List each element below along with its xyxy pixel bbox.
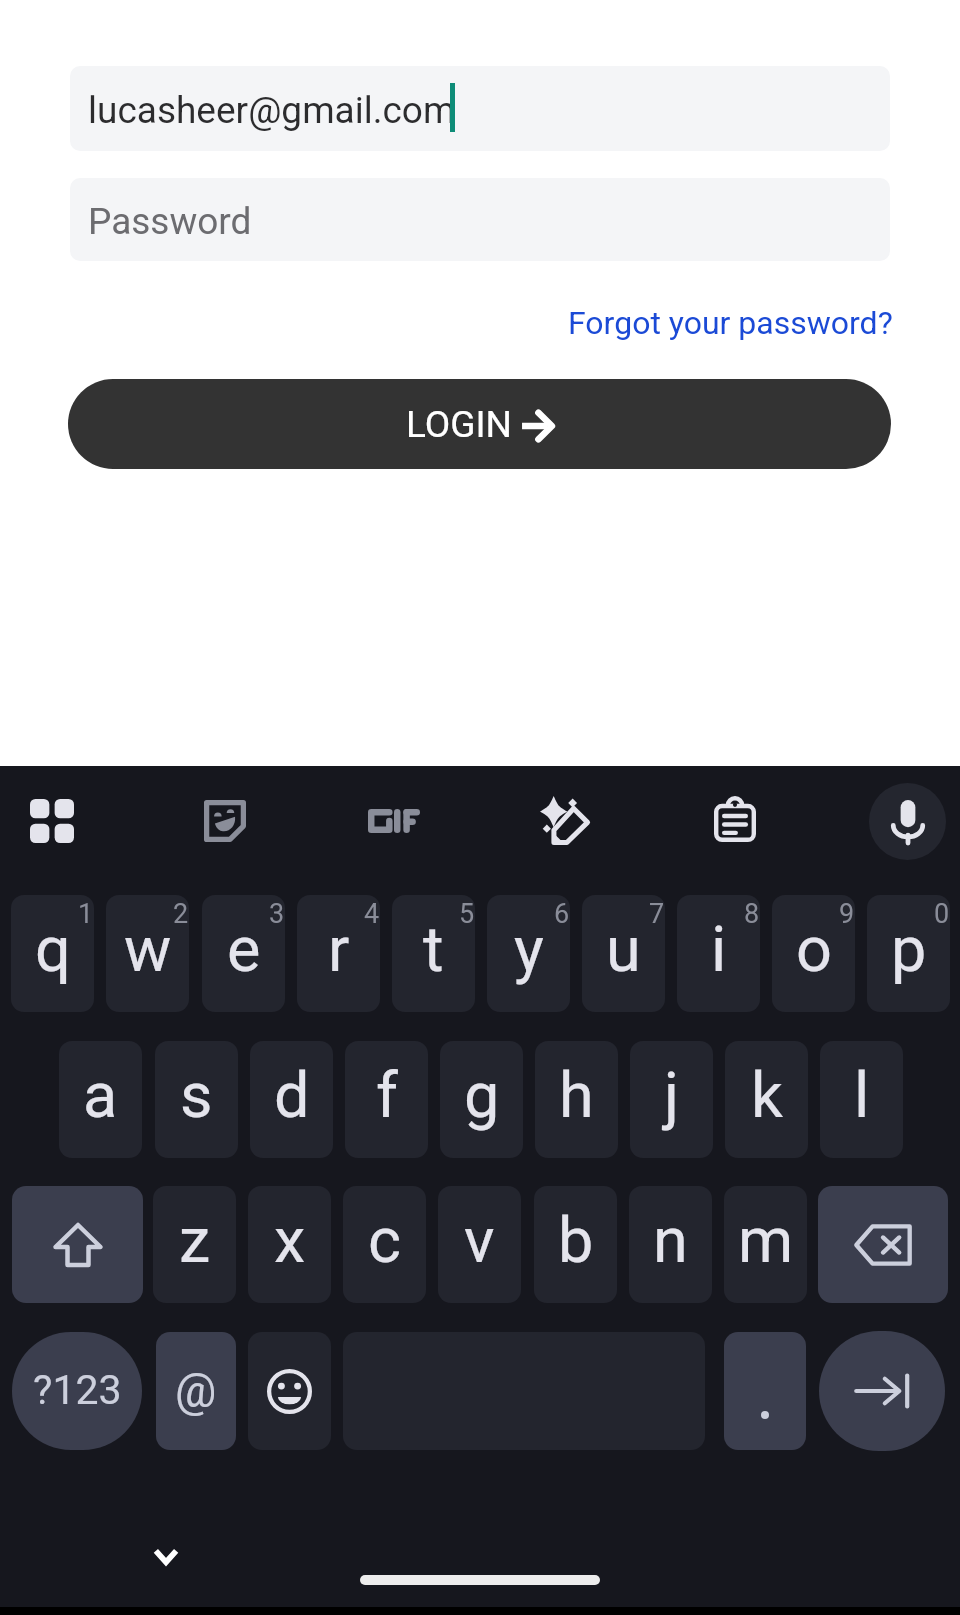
staticText: y [514,913,544,987]
button[interactable]: Next [819,1331,945,1451]
button[interactable]: g [440,1041,523,1158]
button[interactable]: w [106,895,189,1012]
staticText: 5 [459,898,475,930]
staticText: l [854,1059,870,1133]
button[interactable]: t [392,895,475,1012]
staticText: e [227,913,261,987]
staticText: p [891,913,927,987]
button[interactable]: Hide keyboard [140,1530,192,1582]
staticText: lucasheer@gmail.com [88,89,456,132]
staticText: 1 [78,898,94,930]
button[interactable]: b [534,1186,617,1303]
staticText: 2 [173,898,189,930]
staticText: q [35,913,71,987]
button[interactable]: ?123 [12,1332,142,1450]
staticText: r [328,913,350,987]
button[interactable]: e [202,895,285,1012]
staticText: a [83,1059,118,1133]
staticText: s [180,1059,213,1133]
button[interactable]: l [820,1041,903,1158]
button[interactable]: s [155,1041,238,1158]
staticText: Password [88,200,252,243]
button[interactable]: x [248,1186,331,1303]
staticText: 6 [554,898,570,930]
button[interactable]: Password [70,178,890,261]
staticText: o [796,913,832,987]
button[interactable]: LOGIN [68,379,891,469]
staticText: f [376,1059,398,1133]
button[interactable]: Keyboard modes [26,795,78,847]
button[interactable]: i [677,895,760,1012]
button[interactable]: m [724,1186,807,1303]
staticText: z [179,1204,211,1278]
button[interactable]: f [345,1041,428,1158]
button[interactable]: Magic compose [538,794,590,846]
button[interactable]: p [867,895,950,1012]
button[interactable]: Emoji [248,1332,331,1450]
staticText: j [664,1059,680,1133]
staticText: 3 [269,898,285,930]
staticText: v [464,1204,495,1278]
staticText: b [558,1204,594,1278]
button[interactable]: r [297,895,380,1012]
staticText: m [738,1204,794,1278]
button[interactable]: Clipboard [709,795,761,847]
staticText: LOGIN [406,403,512,446]
staticText: @ [175,1364,217,1418]
staticText: 7 [649,898,665,930]
staticText: i [711,913,727,987]
button[interactable]: Forgot your password? [556,298,893,348]
staticText: h [559,1059,594,1133]
button[interactable]: u [582,895,665,1012]
staticText: 0 [934,898,950,930]
button[interactable]: z [153,1186,236,1303]
staticText: c [368,1204,401,1278]
button[interactable]: a [59,1041,142,1158]
button[interactable]: q [11,895,94,1012]
staticText: k [751,1059,783,1133]
button[interactable]: d [250,1041,333,1158]
button[interactable]: v [438,1186,521,1303]
staticText: x [274,1204,306,1278]
staticText: w [124,913,172,987]
button[interactable]: k [725,1041,808,1158]
button[interactable]: Backspace [818,1186,948,1303]
button[interactable]: j [630,1041,713,1158]
button[interactable]: Stickers [199,795,251,847]
staticText: n [653,1204,688,1278]
staticText: 9 [839,898,855,930]
button[interactable]: @ [156,1332,236,1450]
button[interactable]: n [629,1186,712,1303]
button[interactable]: Shift [12,1186,143,1303]
staticText: 4 [364,898,380,930]
staticText: t [423,913,444,987]
button[interactable]: c [343,1186,426,1303]
button[interactable]: y [487,895,570,1012]
staticText: u [606,913,641,987]
button[interactable]: GIF [356,796,432,846]
staticText: ?123 [33,1366,122,1414]
staticText: Forgot your password? [568,304,893,342]
button[interactable] [724,1332,806,1450]
button[interactable]: lucasheer@gmail.com [70,66,890,151]
button[interactable]: h [535,1041,618,1158]
staticText: d [274,1059,310,1133]
staticText: 8 [744,898,760,930]
staticText: g [464,1059,500,1133]
button[interactable]: o [772,895,855,1012]
button[interactable]: Voice input [869,783,946,860]
